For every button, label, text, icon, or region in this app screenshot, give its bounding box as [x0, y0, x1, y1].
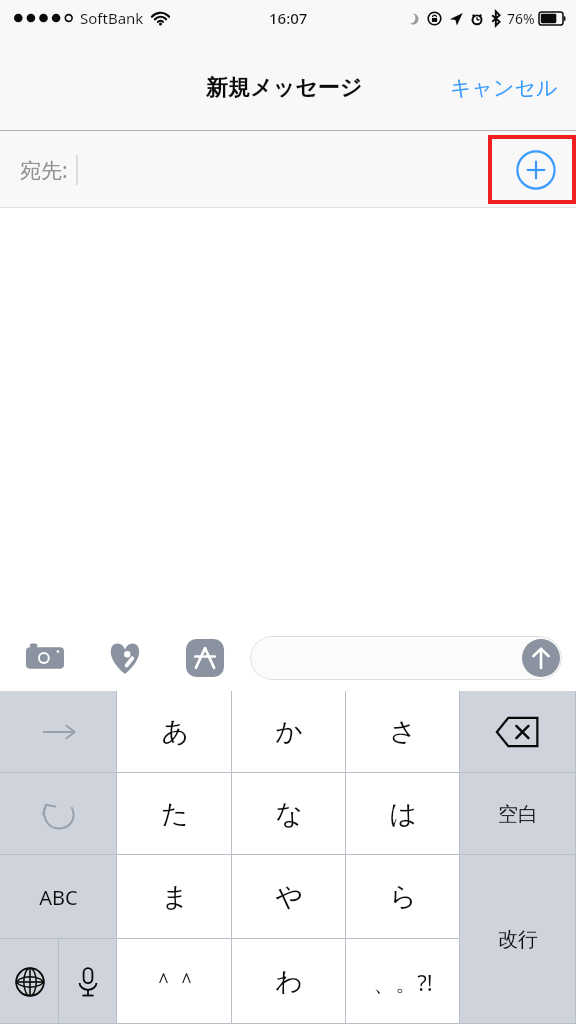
staticText: SoftBank [80, 8, 144, 28]
staticText: や [275, 880, 303, 914]
staticText: 76% [507, 9, 535, 28]
button[interactable]: さ [346, 691, 460, 773]
button[interactable]: Dictation [59, 939, 117, 1024]
staticText: は [389, 797, 417, 831]
button[interactable]: ら [346, 855, 460, 939]
staticText: な [275, 797, 303, 831]
button[interactable]: な [232, 773, 346, 855]
button[interactable]: ま [117, 855, 232, 939]
button[interactable]: わ [232, 939, 346, 1024]
staticText: 空白 [498, 802, 538, 827]
button[interactable]: ABC [0, 855, 117, 939]
staticText: あ [161, 715, 189, 749]
button[interactable]: Send [522, 639, 560, 677]
staticText: 改行 [498, 927, 538, 952]
button[interactable]: や [232, 855, 346, 939]
button[interactable]: 、。?! [346, 939, 460, 1024]
button[interactable]: た [117, 773, 232, 855]
button[interactable]: 改行 [460, 855, 576, 1024]
staticText: ら [389, 880, 417, 914]
staticText: か [275, 715, 303, 749]
staticText: た [161, 797, 189, 831]
button[interactable]: キャンセル [432, 65, 576, 111]
staticText: わ [275, 965, 303, 999]
button[interactable]: Next candidate [0, 691, 117, 773]
button[interactable]: ＾＾ [117, 939, 232, 1024]
staticText: 新規メッセージ [206, 74, 363, 102]
staticText: ＾＾ [152, 967, 198, 996]
button[interactable]: は [346, 773, 460, 855]
staticText: 16:07 [269, 8, 308, 28]
staticText: ABC [39, 884, 78, 911]
button[interactable]: Undo [0, 773, 117, 855]
button[interactable]: Add contact [516, 150, 556, 190]
staticText: ま [161, 880, 189, 914]
staticText: キャンセル [450, 75, 558, 101]
staticText: さ [389, 715, 417, 749]
button[interactable]: Camera [22, 635, 68, 681]
button[interactable]: あ [117, 691, 232, 773]
button[interactable]: 空白 [460, 773, 576, 855]
staticText: 、。?! [373, 967, 433, 997]
button[interactable]: Switch keyboard [0, 939, 59, 1024]
button[interactable]: Delete [460, 691, 576, 773]
button[interactable]: Digital Touch [102, 635, 148, 681]
button[interactable]: Send [250, 636, 562, 680]
staticText: 宛先: [20, 156, 68, 185]
button[interactable]: App Store [182, 635, 228, 681]
button[interactable]: か [232, 691, 346, 773]
